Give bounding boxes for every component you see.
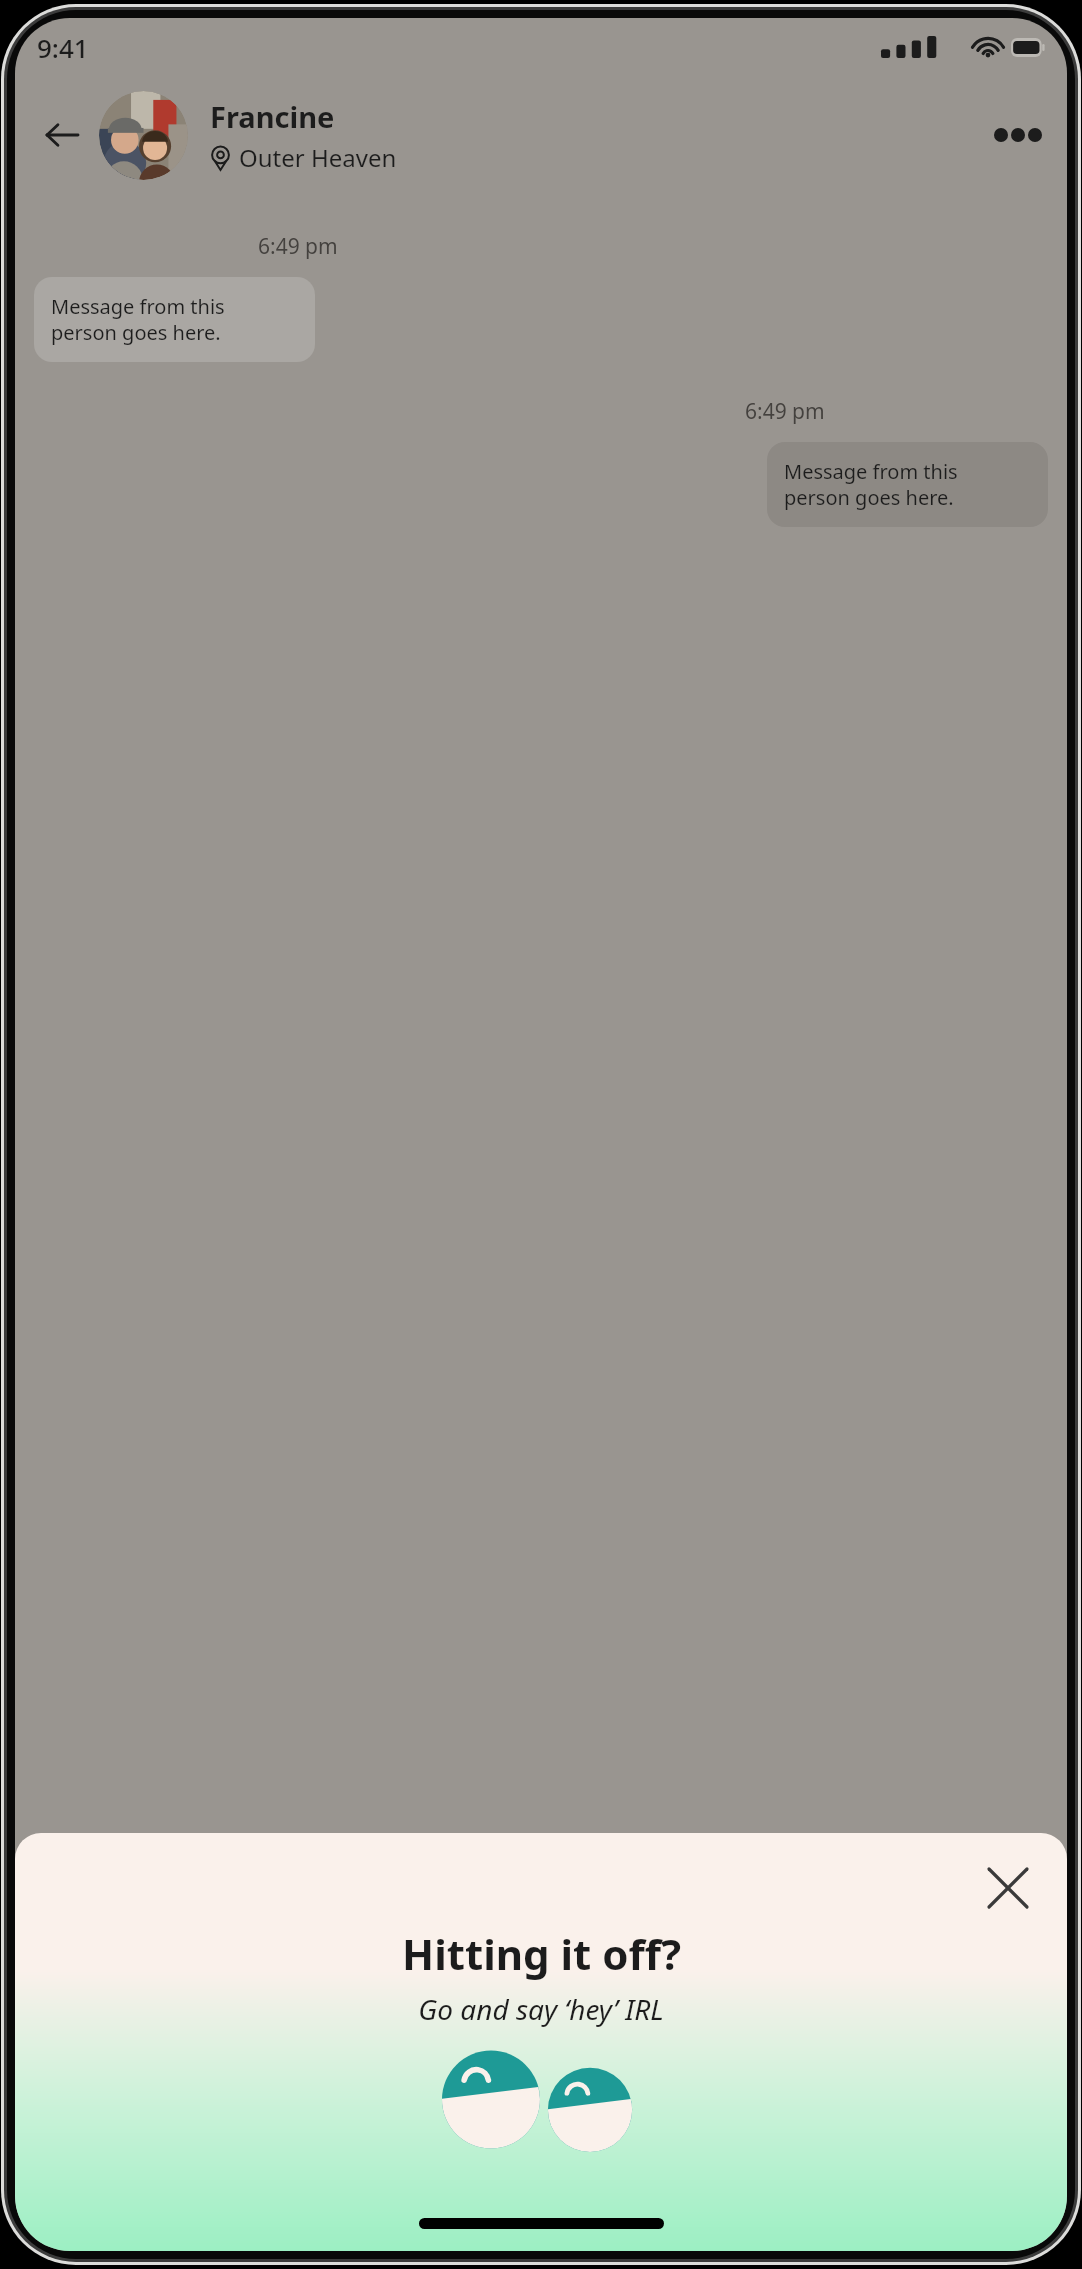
staticText: 6:49 pm (258, 232, 338, 261)
staticText: Message from this person goes here. (784, 458, 1031, 511)
staticText: Francine (210, 97, 335, 136)
button[interactable]: Message from this person goes here. (767, 442, 1048, 527)
button[interactable]: Message from this person goes here. (34, 277, 315, 362)
staticText: Go and say ‘hey’ IRL (418, 1990, 664, 2028)
button[interactable]: Close (977, 1857, 1039, 1919)
staticText: Message from this person goes here. (51, 293, 298, 346)
button[interactable]: Back (33, 106, 91, 164)
button[interactable]: Francine (210, 97, 987, 174)
staticText: Outer Heaven (239, 141, 397, 174)
button[interactable]: More options (987, 104, 1049, 166)
staticText: Hitting it off? (402, 1925, 681, 1982)
staticText: 6:49 pm (745, 397, 825, 426)
staticText: 9:41 (37, 30, 89, 65)
button[interactable]: Profile photo (99, 91, 188, 180)
